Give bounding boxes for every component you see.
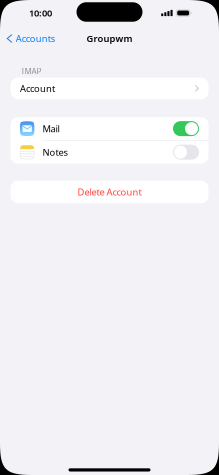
button[interactable]: Accounts: [0, 27, 55, 50]
button[interactable]: Notes: [10, 141, 208, 164]
button[interactable]: Delete Account: [10, 181, 208, 203]
button[interactable]: Account: [10, 78, 208, 99]
button[interactable]: [173, 121, 199, 136]
staticText: IMAP: [21, 66, 41, 77]
staticText: Groupwm: [86, 32, 132, 45]
staticText: Account: [20, 82, 55, 95]
button[interactable]: [173, 145, 199, 160]
staticText: Accounts: [16, 32, 55, 45]
staticText: Mail: [42, 122, 59, 135]
staticText: Delete Account: [77, 186, 141, 198]
staticText: Notes: [42, 146, 67, 158]
button[interactable]: Mail: [10, 117, 208, 140]
staticText: 10:00: [29, 7, 52, 19]
